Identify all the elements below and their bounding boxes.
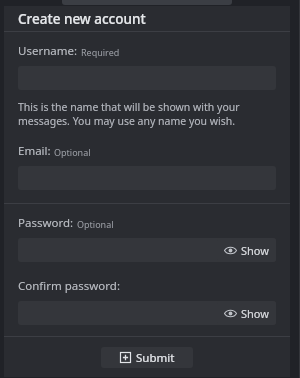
staticText: Create new account bbox=[18, 10, 146, 28]
staticText: Show bbox=[241, 306, 269, 321]
button[interactable]: Show bbox=[18, 238, 276, 262]
staticText: This is the name that will be shown with… bbox=[18, 100, 276, 128]
staticText: Submit bbox=[136, 350, 175, 366]
button[interactable]: Show bbox=[217, 238, 276, 262]
button[interactable]: Show bbox=[18, 301, 276, 325]
staticText: Optional bbox=[77, 218, 114, 230]
staticText: Optional bbox=[54, 146, 91, 158]
button[interactable]: Submit bbox=[101, 347, 193, 368]
staticText: Show bbox=[241, 243, 269, 258]
staticText: Password: bbox=[18, 215, 74, 231]
staticText: Email: bbox=[18, 143, 51, 159]
staticText: Username: bbox=[18, 43, 78, 59]
staticText: Required bbox=[81, 46, 120, 58]
staticText: Confirm password: bbox=[18, 278, 120, 294]
button[interactable]: Show bbox=[217, 301, 276, 325]
